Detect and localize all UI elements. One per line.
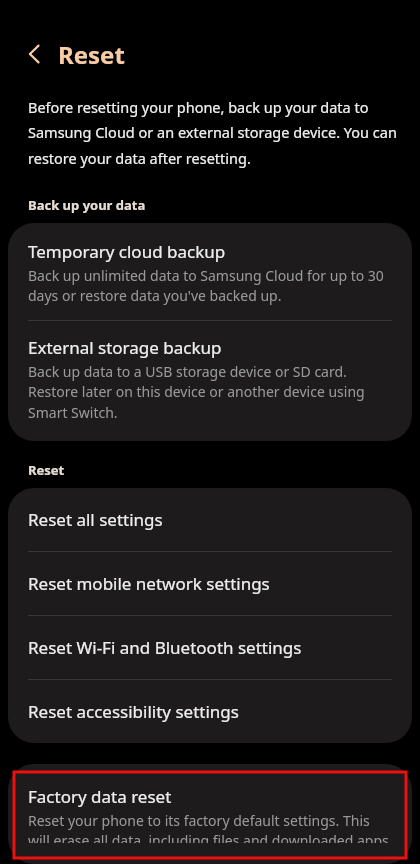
staticText: Reset Wi-Fi and Bluetooth settings xyxy=(28,636,302,659)
staticText: Factory data reset xyxy=(28,785,172,808)
staticText: Reset mobile network settings xyxy=(28,572,270,595)
button[interactable]: Factory data reset xyxy=(8,764,412,864)
staticText: Back up your data xyxy=(28,196,146,214)
staticText: External storage backup xyxy=(28,336,222,359)
button[interactable]: Reset all settings xyxy=(8,488,412,551)
staticText: Reset xyxy=(28,461,65,479)
staticText: Back up data to a USB storage device or … xyxy=(28,362,394,423)
staticText: Reset your phone to its factory default … xyxy=(28,811,394,843)
staticText: Reset accessibility settings xyxy=(28,700,239,723)
button[interactable]: Back xyxy=(13,32,57,76)
staticText: Back up unlimited data to Samsung Cloud … xyxy=(28,266,394,306)
button[interactable]: External storage backup xyxy=(8,321,412,441)
button[interactable]: Reset mobile network settings xyxy=(8,552,412,615)
staticText: Reset all settings xyxy=(28,508,163,531)
staticText: Temporary cloud backup xyxy=(28,240,226,263)
staticText: Reset xyxy=(58,38,125,71)
button[interactable]: Reset accessibility settings xyxy=(8,680,412,743)
staticText: Before resetting your phone, back up you… xyxy=(28,97,400,169)
button[interactable]: Reset Wi-Fi and Bluetooth settings xyxy=(8,616,412,679)
button[interactable]: Temporary cloud backup xyxy=(8,223,412,320)
